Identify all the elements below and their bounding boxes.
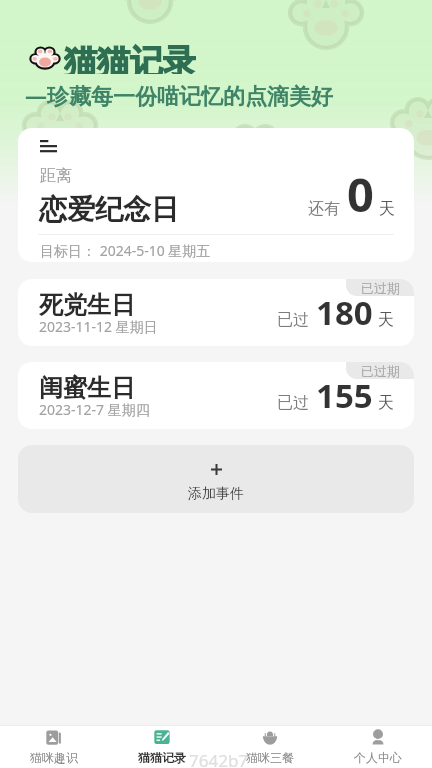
button[interactable]: 个人中心 bbox=[324, 726, 432, 768]
staticText: 死党生日 bbox=[39, 290, 135, 320]
staticText: 添加事件 bbox=[188, 485, 244, 503]
staticText: 闺蜜生日 bbox=[39, 373, 135, 403]
button[interactable]: Menu bbox=[18, 128, 414, 262]
button[interactable]: 已过期 bbox=[18, 362, 414, 429]
staticText: 已过 bbox=[277, 310, 309, 330]
staticText: 已过期 bbox=[361, 280, 400, 296]
staticText: 目标日： 2024-5-10 星期五 bbox=[40, 241, 211, 260]
other: Add bbox=[211, 464, 222, 475]
staticText: 0 bbox=[347, 162, 374, 226]
staticText: 还有 bbox=[308, 199, 340, 219]
staticText: 已过 bbox=[277, 393, 309, 413]
button[interactable]: 猫咪趣识 bbox=[0, 726, 108, 768]
button[interactable]: 猫猫记录 bbox=[108, 726, 216, 768]
staticText: 天 bbox=[378, 393, 394, 413]
staticText: 猫咪三餐 bbox=[246, 750, 294, 765]
staticText: 距离 bbox=[40, 166, 72, 186]
staticText: 2023-11-12 星期日 bbox=[39, 317, 158, 336]
staticText: 猫猫记录 bbox=[138, 750, 186, 765]
other: Menu bbox=[40, 140, 57, 152]
staticText: —珍藏每一份喵记忆的点滴美好 bbox=[25, 80, 334, 110]
staticText: 天 bbox=[379, 199, 395, 219]
staticText: 个人中心 bbox=[354, 750, 402, 765]
staticText: 180 bbox=[316, 290, 373, 335]
staticText: 7642b7 bbox=[189, 749, 249, 768]
button[interactable]: Add bbox=[18, 445, 414, 513]
other: Cat paw logo bbox=[28, 45, 62, 70]
staticText: 恋爱纪念日 bbox=[39, 192, 179, 227]
button[interactable]: 已过期 bbox=[18, 279, 414, 346]
staticText: 2023-12-7 星期四 bbox=[39, 400, 150, 419]
staticText: 猫猫记录 bbox=[64, 41, 196, 74]
staticText: 已过期 bbox=[361, 363, 400, 379]
staticText: 155 bbox=[316, 373, 373, 418]
staticText: 猫咪趣识 bbox=[30, 750, 78, 765]
staticText: 天 bbox=[378, 310, 394, 330]
button[interactable]: 猫咪三餐 bbox=[216, 726, 324, 768]
